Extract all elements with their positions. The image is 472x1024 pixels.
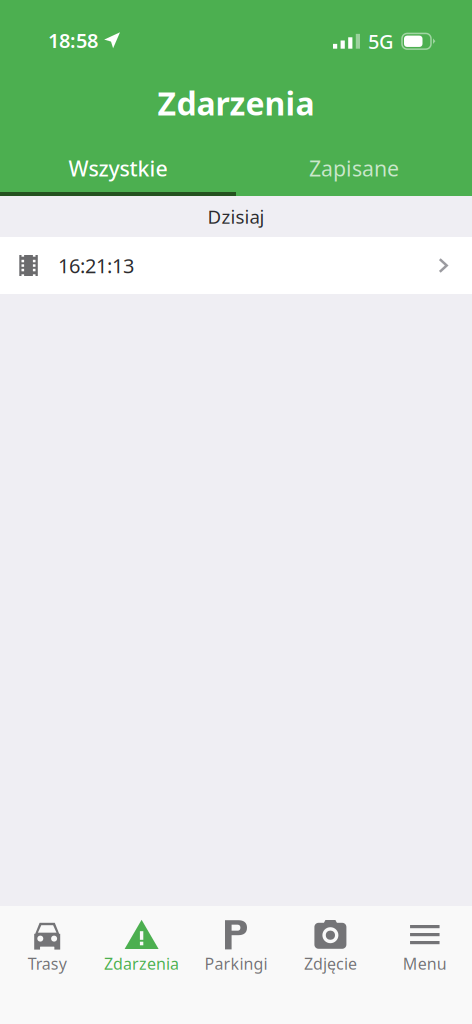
button[interactable]: Trasy <box>0 906 94 971</box>
button[interactable]: Zdjęcie <box>283 906 378 971</box>
staticText: 5G <box>368 28 394 55</box>
staticText: Parkingi <box>204 953 267 974</box>
staticText: Trasy <box>28 953 67 974</box>
button[interactable]: Zapisane <box>236 154 472 180</box>
staticText: Wszystkie <box>68 154 167 180</box>
staticText: Zapisane <box>309 154 399 180</box>
button[interactable]: Wszystkie <box>0 154 236 180</box>
button[interactable]: Zdarzenia <box>94 906 189 971</box>
button[interactable]: Menu <box>378 906 472 971</box>
staticText: 16:21:13 <box>58 252 134 279</box>
staticText: Zdarzenia <box>157 82 314 124</box>
button[interactable]: Parkingi <box>189 906 283 971</box>
staticText: Menu <box>403 953 447 974</box>
staticText: 18:58 <box>48 27 98 54</box>
staticText: Dzisiaj <box>207 204 264 229</box>
button[interactable]: 16:21:13 <box>0 237 472 294</box>
staticText: Zdjęcie <box>304 953 357 974</box>
staticText: Zdarzenia <box>104 953 179 974</box>
